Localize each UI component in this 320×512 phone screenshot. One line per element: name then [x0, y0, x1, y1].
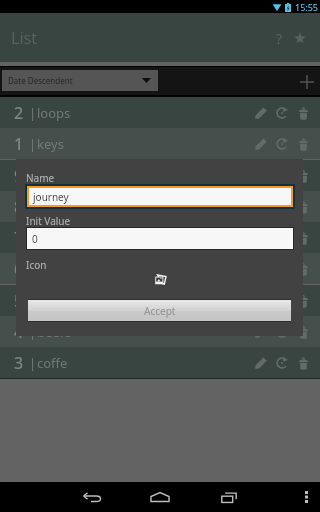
button[interactable]: 2 — [0, 97, 320, 128]
staticText: | — [29, 323, 37, 341]
staticText: | — [29, 135, 37, 153]
staticText: | — [29, 198, 37, 216]
staticText: 1 — [14, 133, 24, 155]
button[interactable]: Delete — [293, 322, 313, 342]
button[interactable]: Date Descendent — [2, 70, 158, 91]
button[interactable]: Edit — [251, 166, 271, 186]
staticText: beers — [37, 323, 72, 341]
button[interactable]: Delete — [293, 353, 313, 373]
button[interactable]: 0 — [27, 228, 293, 249]
staticText: | — [29, 229, 37, 247]
button[interactable]: Reset — [272, 291, 292, 311]
button[interactable]: Reset — [272, 103, 292, 123]
button[interactable]: Accept — [28, 300, 291, 321]
button[interactable]: Reset — [272, 134, 292, 154]
button[interactable]: 7 — [0, 222, 320, 253]
button[interactable]: Back — [77, 482, 107, 512]
button[interactable]: Delete — [293, 197, 313, 217]
button[interactable]: Edit — [251, 197, 271, 217]
button[interactable]: 9 — [0, 160, 320, 191]
staticText: 5 — [14, 290, 24, 312]
staticText: List — [11, 27, 37, 49]
button[interactable]: 6 — [0, 253, 320, 284]
button[interactable]: Favorite — [290, 18, 310, 58]
staticText: 6 — [14, 258, 24, 280]
button[interactable]: Delete — [293, 291, 313, 311]
staticText: item — [37, 198, 65, 216]
button[interactable]: 5 — [0, 285, 320, 316]
button[interactable]: Delete — [293, 228, 313, 248]
staticText: 2 — [14, 102, 24, 124]
staticText: 15:55 — [295, 1, 319, 13]
button[interactable]: Edit — [251, 103, 271, 123]
staticText: item — [37, 167, 65, 185]
staticText: coffe — [37, 354, 68, 372]
button[interactable]: 3 — [0, 347, 320, 378]
button[interactable]: 4 — [0, 316, 320, 347]
staticText: | — [29, 167, 37, 185]
staticText: loops — [37, 104, 71, 122]
staticText: | — [29, 354, 37, 372]
button[interactable]: 1 — [0, 128, 320, 159]
staticText: Name — [26, 171, 55, 185]
staticText: Icon — [26, 258, 47, 272]
staticText: 8 — [14, 196, 24, 218]
staticText: 3 — [14, 352, 24, 374]
button[interactable]: Reset — [272, 197, 292, 217]
button[interactable]: Edit — [251, 322, 271, 342]
staticText: ? — [276, 29, 283, 48]
button[interactable]: 8 — [0, 191, 320, 222]
staticText: | — [29, 292, 37, 310]
button[interactable]: Choose icon — [148, 267, 172, 291]
staticText: 0 — [32, 232, 38, 246]
staticText: 9 — [14, 165, 24, 187]
button[interactable]: Reset — [272, 322, 292, 342]
button[interactable]: Reset — [272, 166, 292, 186]
button[interactable]: Add — [293, 68, 320, 96]
staticText: 7 — [14, 227, 24, 249]
button[interactable]: Reset — [272, 353, 292, 373]
button[interactable]: Home — [145, 482, 175, 512]
staticText: Init Value — [26, 214, 71, 228]
button[interactable]: More options — [295, 486, 317, 508]
staticText: Date Descendent — [8, 75, 73, 86]
button[interactable]: Delete — [293, 259, 313, 279]
button[interactable]: journey — [29, 188, 291, 205]
staticText: keys — [37, 135, 64, 153]
staticText: | — [29, 260, 37, 278]
button[interactable]: Edit — [251, 134, 271, 154]
button[interactable]: Edit — [251, 353, 271, 373]
button[interactable]: Edit — [251, 291, 271, 311]
button[interactable]: Delete — [293, 166, 313, 186]
staticText: item — [37, 292, 65, 310]
staticText: | — [29, 104, 37, 122]
button[interactable]: Recents — [214, 482, 244, 512]
staticText: journey — [33, 190, 69, 204]
staticText: item — [37, 260, 65, 278]
button[interactable]: Delete — [293, 103, 313, 123]
staticText: Accept — [144, 304, 176, 318]
staticText: 4 — [14, 321, 24, 343]
button[interactable]: Help — [269, 18, 289, 58]
button[interactable]: Delete — [293, 134, 313, 154]
